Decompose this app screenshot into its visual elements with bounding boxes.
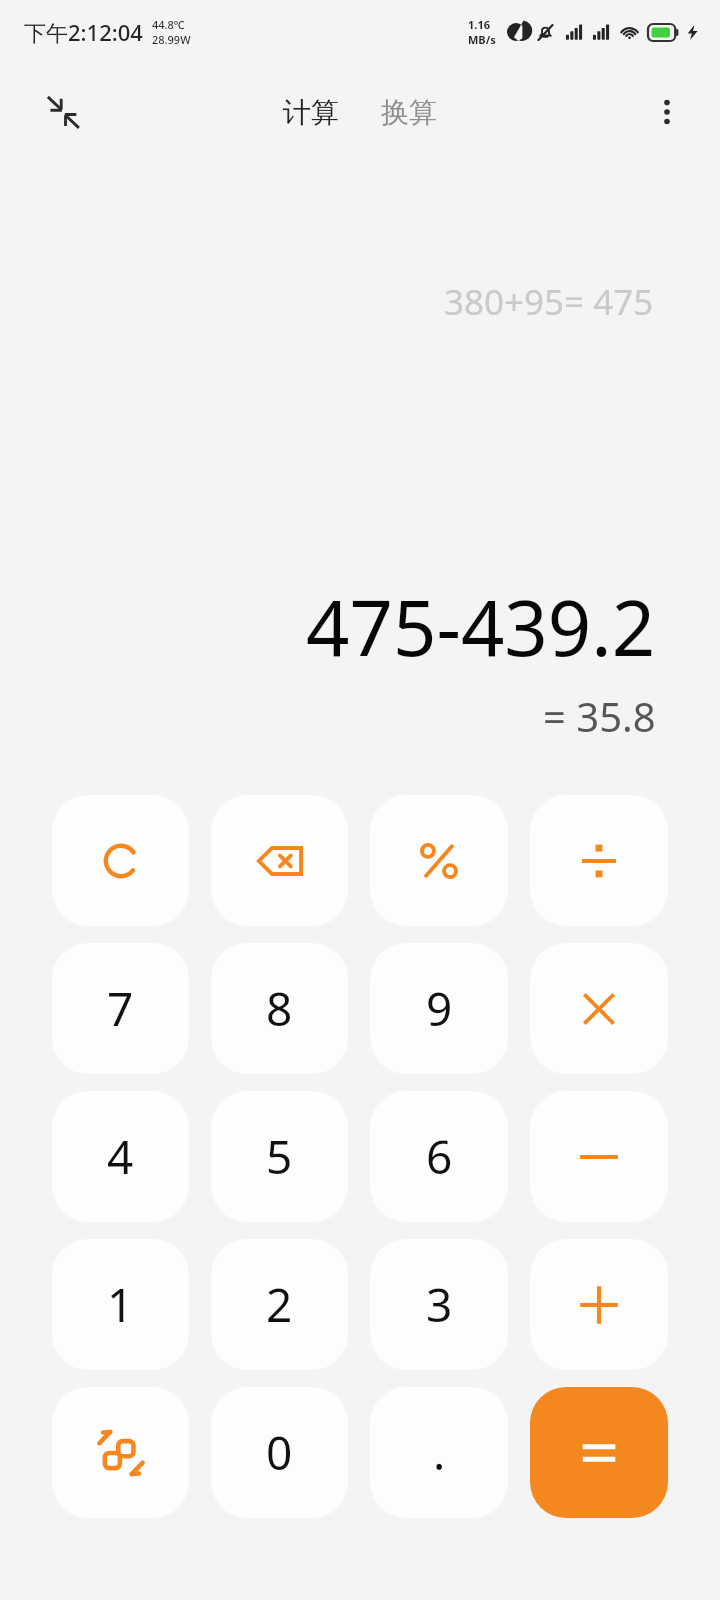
staticText: . — [433, 1421, 446, 1484]
button[interactable]: More options — [640, 85, 694, 139]
button[interactable]: 7 — [52, 943, 189, 1074]
button[interactable]: Equals — [530, 1387, 668, 1518]
button[interactable]: . — [370, 1387, 508, 1518]
button[interactable]: Collapse — [34, 83, 92, 141]
staticText: 5 — [266, 1125, 293, 1188]
staticText: 8 — [266, 977, 293, 1040]
staticText: 计算 — [283, 95, 339, 130]
staticText: 下午2:12:04 — [24, 17, 143, 47]
button[interactable]: Plus — [530, 1239, 668, 1370]
button[interactable]: Multiply — [530, 943, 668, 1074]
button[interactable]: Percent — [370, 795, 508, 926]
button[interactable]: 4 — [52, 1091, 189, 1222]
staticText: 1 — [107, 1273, 134, 1336]
button[interactable]: 计算 — [273, 87, 349, 138]
button[interactable]: 8 — [211, 943, 348, 1074]
button[interactable]: 5 — [211, 1091, 348, 1222]
staticText: 2 — [266, 1273, 293, 1336]
staticText: 7 — [107, 977, 134, 1040]
button[interactable]: 9 — [370, 943, 508, 1074]
button[interactable]: 3 — [370, 1239, 508, 1370]
button[interactable]: Divide — [530, 795, 668, 926]
staticText: 6 — [426, 1125, 453, 1188]
button[interactable]: 1 — [52, 1239, 189, 1370]
staticText: 3 — [426, 1273, 453, 1336]
staticText: MB/s — [468, 32, 496, 47]
button[interactable]: 0 — [211, 1387, 348, 1518]
staticText: 换算 — [381, 95, 437, 130]
staticText: 44.8℃ — [152, 17, 185, 32]
button[interactable]: Minus — [530, 1091, 668, 1222]
button[interactable]: Convert — [52, 1387, 189, 1518]
staticText: 0 — [266, 1421, 293, 1484]
staticText: = 35.8 — [543, 689, 656, 743]
staticText: 380+95= 475 — [444, 278, 654, 326]
staticText: 9 — [426, 977, 453, 1040]
button[interactable]: 换算 — [371, 87, 447, 138]
button[interactable]: Clear — [52, 795, 189, 926]
button[interactable]: 2 — [211, 1239, 348, 1370]
staticText: 4 — [107, 1125, 134, 1188]
button[interactable]: 6 — [370, 1091, 508, 1222]
staticText: 28.99W — [152, 32, 191, 47]
staticText: 475-439.2 — [306, 575, 656, 679]
button[interactable]: Backspace — [211, 795, 348, 926]
staticText: 1.16 — [468, 17, 490, 32]
